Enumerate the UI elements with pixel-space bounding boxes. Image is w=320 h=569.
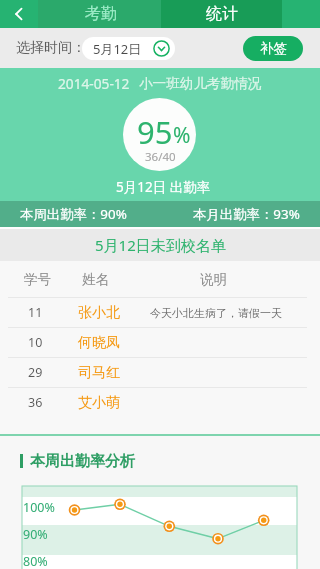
- staticText: 补签: [260, 40, 287, 57]
- staticText: 2014-05-12: [58, 74, 130, 93]
- staticText: 本周出勤率分析: [30, 452, 135, 471]
- staticText: 80%: [23, 553, 48, 569]
- staticText: 36/40: [145, 149, 176, 165]
- button[interactable]: 29: [0, 358, 320, 387]
- button[interactable]: 5月12日: [82, 37, 175, 60]
- button[interactable]: 补签: [243, 36, 303, 61]
- staticText: %: [173, 121, 191, 150]
- staticText: 95: [137, 111, 173, 153]
- staticText: 5月12日未到校名单: [95, 235, 226, 255]
- staticText: 小一班幼儿考勤情况: [139, 75, 262, 92]
- staticText: 10: [28, 334, 43, 351]
- staticText: 张小北: [78, 304, 120, 322]
- staticText: 学号: [24, 271, 51, 288]
- staticText: 5月12日 出勤率: [116, 178, 211, 196]
- button[interactable]: 考勤: [38, 0, 161, 28]
- staticText: 司马红: [78, 364, 120, 382]
- staticText: 100%: [23, 499, 55, 516]
- staticText: 艾小萌: [78, 394, 120, 412]
- button[interactable]: 36: [0, 388, 320, 417]
- staticText: 5月12日: [93, 40, 142, 58]
- button[interactable]: 11: [0, 298, 320, 327]
- staticText: 统计: [206, 4, 238, 24]
- staticText: 90%: [23, 526, 48, 543]
- staticText: 29: [28, 364, 43, 381]
- button[interactable]: Back: [0, 0, 38, 28]
- staticText: 何晓凤: [78, 334, 120, 352]
- staticText: 36: [28, 394, 43, 411]
- button[interactable]: 统计: [161, 0, 282, 28]
- staticText: 姓名: [82, 271, 109, 288]
- staticText: 本月出勤率：93%: [193, 205, 300, 223]
- staticText: 本周出勤率：90%: [20, 205, 127, 223]
- staticText: 今天小北生病了，请假一天: [150, 306, 282, 320]
- staticText: 选择时间：: [16, 39, 86, 57]
- staticText: 11: [28, 304, 43, 321]
- button[interactable]: 10: [0, 328, 320, 357]
- staticText: 说明: [200, 271, 227, 288]
- staticText: 考勤: [85, 4, 117, 24]
